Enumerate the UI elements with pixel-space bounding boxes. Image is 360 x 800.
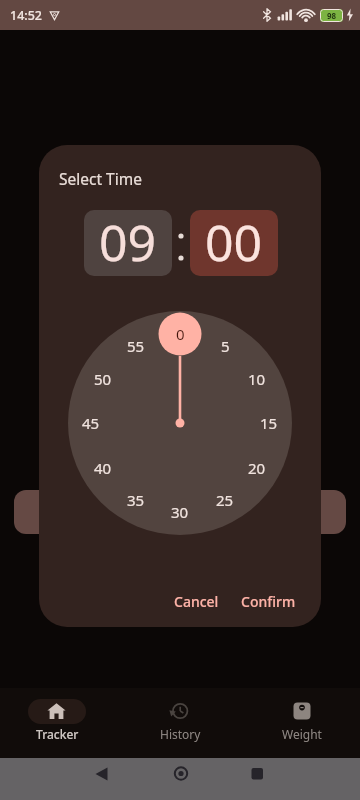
button[interactable]	[157, 758, 205, 790]
staticText: 35	[127, 490, 145, 510]
staticText: 5	[221, 336, 230, 356]
staticText: 98	[327, 10, 337, 21]
button[interactable]: 00	[190, 210, 278, 276]
button[interactable]	[233, 758, 281, 790]
button[interactable]	[17, 688, 97, 758]
button[interactable]: Confirm	[228, 583, 308, 620]
staticText: Confirm	[241, 592, 296, 611]
staticText: 30	[171, 502, 189, 522]
staticText: 50	[94, 369, 112, 389]
staticText: 45	[82, 413, 100, 433]
staticText: Cancel	[174, 592, 219, 611]
staticText: 09	[99, 210, 157, 274]
button[interactable]	[300, 490, 346, 534]
button[interactable]: 09	[84, 210, 172, 276]
staticText: 0	[176, 324, 185, 344]
staticText: Select Time	[59, 168, 142, 189]
staticText: Tracker	[36, 726, 79, 742]
staticText: 20	[248, 458, 266, 478]
staticText: 55	[127, 336, 145, 356]
button[interactable]: Cancel	[161, 583, 231, 620]
staticText: History	[160, 726, 201, 742]
staticText: 40	[94, 458, 112, 478]
staticText: Weight	[282, 726, 322, 742]
button[interactable]	[140, 688, 220, 758]
staticText: 00	[205, 210, 263, 274]
button[interactable]	[14, 490, 60, 534]
staticText: 15	[260, 413, 278, 433]
button[interactable]	[77, 758, 125, 790]
button[interactable]	[262, 688, 342, 758]
staticText: 14:52	[10, 7, 43, 24]
staticText: 25	[216, 490, 234, 510]
staticText: 10	[248, 369, 266, 389]
